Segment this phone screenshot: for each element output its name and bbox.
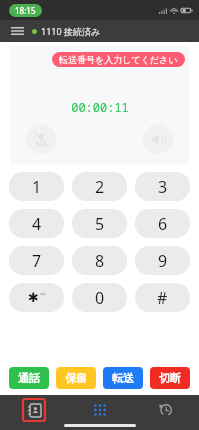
staticText: 転送番号を入力してください — [59, 54, 178, 65]
staticText: 4 — [32, 213, 42, 235]
staticText: 18:15 — [15, 5, 36, 16]
button[interactable]: 転送番号を入力してください — [52, 52, 185, 67]
staticText: 切断 — [159, 371, 181, 385]
button[interactable]: 2 — [72, 172, 127, 201]
button[interactable]: Mute — [26, 124, 56, 154]
button[interactable]: # — [135, 283, 190, 312]
staticText: 8 — [95, 250, 105, 272]
button[interactable]: 5 — [72, 209, 127, 238]
button[interactable]: History — [155, 399, 177, 421]
button[interactable]: 3 — [135, 172, 190, 201]
button[interactable]: Dialpad — [89, 399, 111, 421]
button[interactable]: ✱ — [9, 283, 64, 312]
staticText: 転送 — [112, 371, 134, 385]
button[interactable]: 切断 — [150, 367, 190, 389]
button[interactable]: 通話 — [9, 367, 49, 389]
button[interactable]: 保留 — [56, 367, 96, 389]
button[interactable]: Contacts — [23, 399, 45, 421]
staticText: 2 — [95, 176, 105, 198]
staticText: 1110 接続済み — [41, 25, 101, 37]
staticText: 7 — [32, 250, 42, 272]
staticText: 3 — [158, 176, 168, 198]
button[interactable]: Speaker — [143, 124, 173, 154]
staticText: 通話 — [18, 371, 40, 385]
button[interactable]: 0 — [72, 283, 127, 312]
button[interactable]: 転送 — [103, 367, 143, 389]
staticText: 00:00:11 — [71, 99, 129, 115]
button[interactable]: Menu — [6, 20, 28, 42]
button[interactable]: 8 — [72, 246, 127, 275]
button[interactable]: 7 — [9, 246, 64, 275]
button[interactable]: 1 — [9, 172, 64, 201]
staticText: 9 — [158, 250, 168, 272]
staticText: # — [157, 287, 168, 309]
button[interactable]: 9 — [135, 246, 190, 275]
button[interactable]: 4 — [9, 209, 64, 238]
staticText: 6 — [158, 213, 168, 235]
staticText: ✱ — [28, 290, 39, 305]
staticText: 保留 — [65, 371, 87, 385]
staticText: 5 — [95, 213, 105, 235]
staticText: 1 — [32, 176, 42, 198]
staticText: <> — [40, 291, 46, 298]
staticText: 0 — [95, 287, 105, 309]
button[interactable]: 6 — [135, 209, 190, 238]
